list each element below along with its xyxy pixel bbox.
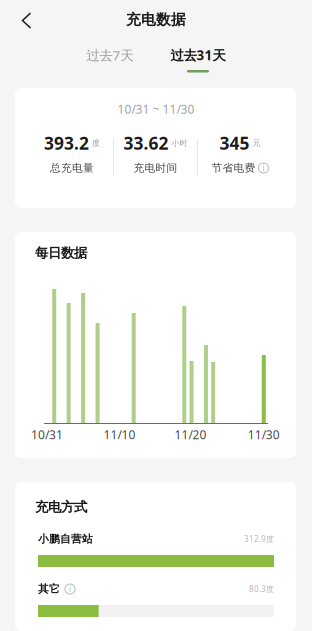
staticText: 充电方式 <box>35 499 87 515</box>
staticText: 小鹏自营站 <box>38 532 93 545</box>
staticText: 每日数据 <box>35 245 87 261</box>
staticText: 11/20 <box>174 426 206 442</box>
staticText: 充电数据 <box>126 10 186 28</box>
staticText: 节省电费 <box>211 161 255 174</box>
staticText: 11/30 <box>248 426 280 442</box>
staticText: 33.62 <box>123 131 168 154</box>
staticText: 10/31 <box>31 426 63 442</box>
staticText: 345 <box>219 131 249 154</box>
staticText: 元 <box>252 138 260 148</box>
button[interactable]: Back <box>7 1 45 39</box>
staticText: 10/31 ~ 11/30 <box>117 101 194 117</box>
staticText: 其它 <box>38 582 60 595</box>
staticText: 过去7天 <box>86 46 133 64</box>
staticText: 80.3度 <box>249 584 274 594</box>
staticText: 充电时间 <box>133 161 177 174</box>
button[interactable]: 过去7天 <box>78 38 142 72</box>
staticText: 393.2 <box>44 131 89 154</box>
staticText: i <box>69 584 71 594</box>
staticText: 度 <box>92 138 100 148</box>
button[interactable]: 过去31天 <box>163 38 233 80</box>
staticText: 312.9度 <box>244 534 274 544</box>
staticText: 总充电量 <box>50 161 94 174</box>
staticText: i <box>262 163 264 173</box>
staticText: 11/10 <box>103 426 135 442</box>
staticText: 过去31天 <box>170 46 225 64</box>
staticText: 小时 <box>171 138 187 148</box>
